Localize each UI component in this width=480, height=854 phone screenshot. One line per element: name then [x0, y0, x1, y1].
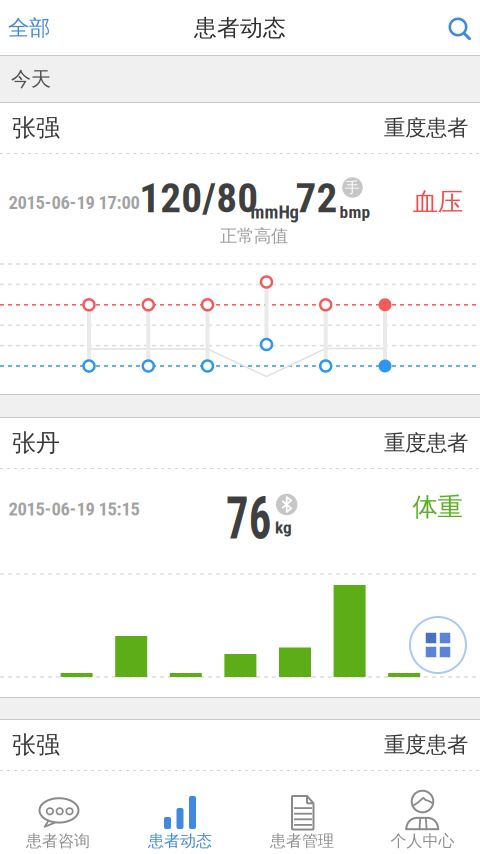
staticText: 重度患者: [384, 115, 468, 141]
staticText: 76: [219, 484, 279, 553]
staticText: 张强: [12, 113, 60, 143]
staticText: 今天: [11, 67, 51, 91]
staticText: 张强: [12, 730, 60, 760]
staticText: 72: [295, 174, 337, 222]
staticText: 张丹: [12, 428, 60, 458]
staticText: 2015-06-19 17:00: [8, 192, 139, 213]
staticText: 2015-06-19 15:15: [8, 498, 139, 520]
staticText: 重度患者: [384, 732, 468, 758]
staticText: 手: [345, 178, 360, 196]
staticText: 重度患者: [384, 430, 468, 456]
button[interactable]: 张丹: [0, 418, 480, 468]
staticText: kg: [275, 517, 292, 538]
staticText: mmHg: [250, 201, 298, 223]
staticText: bmp: [339, 202, 370, 222]
button[interactable]: 张强: [0, 103, 480, 153]
button[interactable]: 张强: [0, 720, 480, 770]
staticText: 患者动态: [194, 14, 286, 42]
button[interactable]: 全部: [2, 7, 56, 49]
staticText: 患者咨询: [26, 831, 90, 851]
button[interactable]: 患者咨询: [0, 771, 120, 854]
button[interactable]: 搜索: [448, 17, 472, 41]
staticText: 正常高值: [220, 225, 288, 247]
staticText: 个人中心: [390, 831, 454, 851]
staticText: 患者管理: [270, 831, 334, 851]
button[interactable]: 个人中心: [360, 771, 480, 854]
button[interactable]: 患者动态: [120, 771, 240, 854]
button[interactable]: 患者管理: [240, 771, 360, 854]
staticText: 120/80: [139, 174, 258, 222]
staticText: 体重: [412, 491, 462, 522]
staticText: 全部: [8, 15, 50, 41]
staticText: 血压: [413, 186, 463, 217]
button[interactable]: 更多: [410, 617, 466, 673]
staticText: 患者动态: [148, 831, 212, 851]
